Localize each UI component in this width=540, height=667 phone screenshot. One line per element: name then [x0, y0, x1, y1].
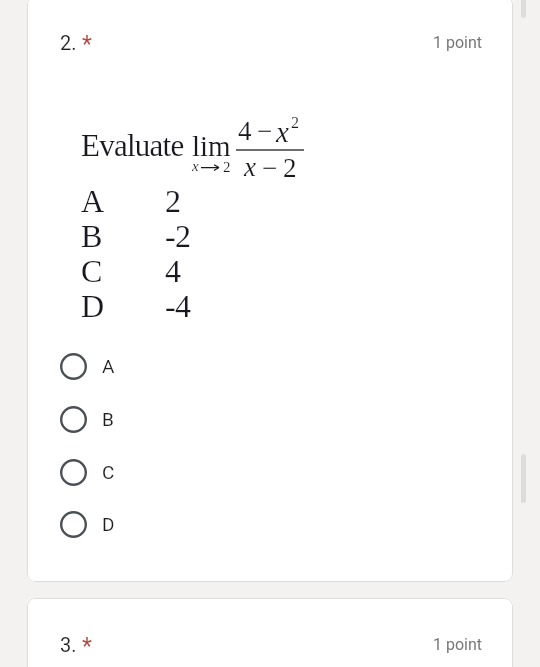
staticText: −: [257, 116, 273, 146]
staticText: -4: [165, 288, 191, 323]
staticText: *: [82, 31, 92, 58]
staticText: 1 point: [27, 33, 482, 52]
button[interactable]: Answer option C, not selected: [27, 446, 513, 498]
staticText: D: [81, 288, 105, 323]
staticText: C: [102, 461, 115, 483]
staticText: D: [102, 513, 115, 535]
staticText: A: [102, 355, 115, 377]
staticText: -2: [165, 218, 191, 253]
staticText: 3.: [60, 633, 77, 656]
staticText: 1 point: [27, 635, 482, 654]
staticText: x: [276, 116, 289, 148]
staticText: 2: [283, 153, 297, 183]
staticText: 4: [165, 253, 181, 288]
staticText: −: [262, 153, 278, 183]
staticText: A: [81, 183, 105, 218]
staticText: 2: [165, 183, 181, 218]
staticText: lim: [192, 130, 231, 162]
staticText: x: [192, 158, 199, 175]
staticText: C: [81, 253, 103, 288]
staticText: B: [81, 218, 103, 253]
staticText: 2: [291, 114, 299, 132]
button[interactable]: Answer option B, not selected: [27, 393, 513, 445]
button[interactable]: Answer option D, not selected: [27, 498, 513, 550]
button[interactable]: Answer option A, not selected: [27, 340, 513, 392]
staticText: 2: [223, 159, 231, 176]
staticText: Evaluate: [81, 128, 184, 162]
staticText: *: [82, 633, 92, 660]
staticText: 4: [238, 116, 252, 146]
staticText: 2.: [60, 31, 77, 54]
staticText: B: [102, 408, 114, 430]
staticText: x: [244, 152, 256, 182]
